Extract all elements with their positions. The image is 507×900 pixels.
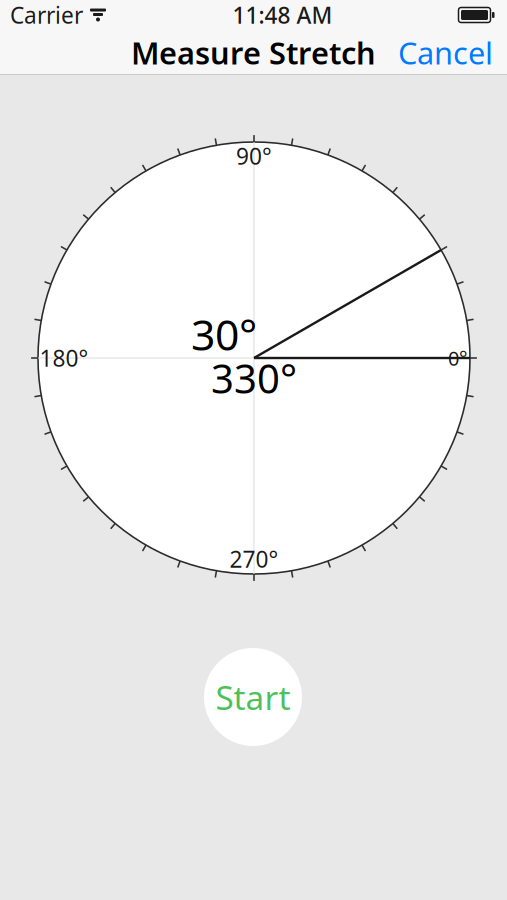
- staticText: 270°: [229, 544, 278, 574]
- button[interactable]: Cancel: [384, 24, 507, 81]
- staticText: 30°: [191, 306, 257, 362]
- staticText: 11:48 AM: [232, 0, 332, 30]
- staticText: 180°: [39, 343, 88, 373]
- staticText: 0°: [448, 345, 468, 371]
- staticText: Carrier: [10, 0, 83, 30]
- staticText: 90°: [236, 141, 272, 171]
- staticText: 330°: [211, 351, 297, 404]
- staticText: Measure Stretch: [131, 32, 376, 73]
- button[interactable]: Start: [204, 648, 302, 746]
- staticText: Start: [215, 675, 290, 719]
- staticText: Cancel: [398, 32, 493, 73]
